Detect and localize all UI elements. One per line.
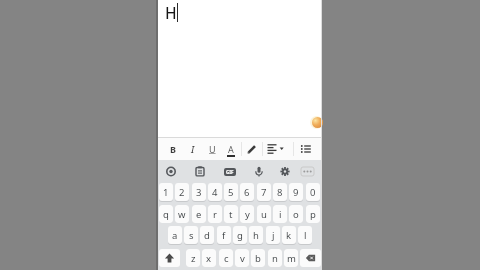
staticText: i bbox=[279, 208, 282, 221]
staticText: 0 bbox=[310, 186, 316, 199]
button[interactable]: h bbox=[249, 226, 263, 244]
staticText: m bbox=[287, 252, 296, 265]
button[interactable]: t bbox=[224, 205, 238, 223]
staticText: s bbox=[189, 229, 194, 242]
staticText: 6 bbox=[244, 186, 250, 199]
staticText: H bbox=[165, 2, 177, 23]
staticText: e bbox=[196, 208, 202, 221]
button[interactable]: y bbox=[240, 205, 254, 223]
staticText: f bbox=[222, 229, 226, 242]
button[interactable]: 7 bbox=[257, 183, 271, 201]
button[interactable] bbox=[159, 249, 180, 267]
staticText: h bbox=[253, 229, 259, 242]
button[interactable] bbox=[299, 163, 316, 180]
button[interactable]: 2 bbox=[175, 183, 189, 201]
staticText: q bbox=[163, 208, 169, 221]
button[interactable]: o bbox=[289, 205, 303, 223]
button[interactable]: GIF bbox=[221, 163, 238, 180]
button[interactable]: z bbox=[186, 249, 200, 267]
button[interactable]: b bbox=[251, 249, 265, 267]
button[interactable]: x bbox=[202, 249, 216, 267]
staticText: 2 bbox=[179, 186, 185, 199]
staticText: 3 bbox=[196, 186, 202, 199]
staticText: 9 bbox=[293, 186, 299, 199]
button[interactable]: A bbox=[223, 139, 239, 159]
button[interactable]: 1 bbox=[159, 183, 173, 201]
staticText: k bbox=[286, 229, 292, 242]
button[interactable]: r bbox=[208, 205, 222, 223]
button[interactable]: k bbox=[282, 226, 296, 244]
button[interactable]: B bbox=[165, 139, 181, 159]
button[interactable]: p bbox=[306, 205, 320, 223]
button[interactable] bbox=[298, 139, 314, 159]
button[interactable]: I bbox=[185, 139, 201, 159]
button[interactable]: c bbox=[219, 249, 233, 267]
staticText: 7 bbox=[261, 186, 267, 199]
staticText: U bbox=[209, 143, 216, 155]
button[interactable]: 5 bbox=[224, 183, 238, 201]
button[interactable]: j bbox=[266, 226, 280, 244]
button[interactable]: 6 bbox=[240, 183, 254, 201]
staticText: y bbox=[245, 208, 250, 221]
staticText: I bbox=[191, 143, 195, 156]
staticText: b bbox=[255, 252, 261, 265]
button[interactable]: 3 bbox=[192, 183, 206, 201]
staticText: g bbox=[237, 229, 243, 242]
staticText: l bbox=[304, 229, 307, 242]
staticText: x bbox=[206, 252, 212, 265]
button[interactable]: m bbox=[284, 249, 298, 267]
button[interactable] bbox=[192, 163, 208, 180]
button[interactable]: 8 bbox=[273, 183, 287, 201]
staticText: j bbox=[272, 229, 275, 242]
button[interactable]: l bbox=[298, 226, 312, 244]
staticText: 8 bbox=[277, 186, 283, 199]
staticText: n bbox=[272, 252, 278, 265]
button[interactable]: 0 bbox=[306, 183, 320, 201]
button[interactable]: g bbox=[233, 226, 247, 244]
staticText: GIF bbox=[226, 169, 234, 175]
button[interactable] bbox=[265, 139, 286, 159]
button[interactable]: 4 bbox=[208, 183, 222, 201]
staticText: c bbox=[224, 252, 229, 265]
staticText: w bbox=[178, 208, 186, 221]
button[interactable] bbox=[277, 163, 293, 180]
button[interactable]: f bbox=[217, 226, 231, 244]
button[interactable]: e bbox=[192, 205, 206, 223]
staticText: 1 bbox=[163, 186, 169, 199]
staticText: t bbox=[229, 208, 233, 221]
staticText: d bbox=[204, 229, 210, 242]
staticText: o bbox=[293, 208, 299, 221]
button[interactable]: i bbox=[273, 205, 287, 223]
staticText: r bbox=[213, 208, 217, 221]
staticText: p bbox=[310, 208, 316, 221]
button[interactable] bbox=[251, 163, 267, 180]
button[interactable] bbox=[300, 249, 321, 267]
button[interactable]: a bbox=[168, 226, 182, 244]
button[interactable] bbox=[163, 163, 179, 180]
staticText: a bbox=[172, 229, 178, 242]
staticText: v bbox=[240, 252, 245, 265]
staticText: u bbox=[261, 208, 267, 221]
button[interactable]: U bbox=[204, 139, 220, 159]
button[interactable]: n bbox=[268, 249, 282, 267]
button[interactable]: 9 bbox=[289, 183, 303, 201]
button[interactable]: q bbox=[159, 205, 173, 223]
staticText: B bbox=[170, 143, 176, 155]
button[interactable] bbox=[312, 117, 323, 128]
button[interactable]: s bbox=[184, 226, 198, 244]
button[interactable]: d bbox=[200, 226, 214, 244]
button[interactable]: u bbox=[257, 205, 271, 223]
button[interactable] bbox=[244, 139, 260, 159]
staticText: A bbox=[228, 143, 234, 155]
staticText: z bbox=[191, 252, 196, 265]
staticText: 5 bbox=[228, 186, 234, 199]
button[interactable]: w bbox=[175, 205, 189, 223]
staticText: 4 bbox=[212, 186, 218, 199]
button[interactable]: v bbox=[235, 249, 249, 267]
